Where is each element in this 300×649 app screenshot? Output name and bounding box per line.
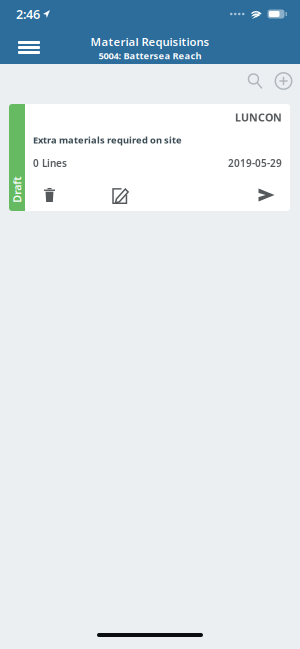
staticText: 0 Lines: [33, 156, 67, 170]
button[interactable]: Delete: [33, 181, 66, 209]
staticText: Extra materials required on site: [33, 133, 182, 146]
staticText: LUNCON: [235, 110, 282, 124]
button[interactable]: Add requisition: [269, 63, 298, 99]
button[interactable]: LUNCON: [0, 104, 300, 211]
button[interactable]: Send: [251, 181, 282, 209]
staticText: 2019-05-29: [228, 156, 282, 170]
staticText: Draft: [4, 182, 30, 197]
button[interactable]: Menu: [7, 28, 51, 64]
staticText: 2:46: [16, 5, 40, 23]
staticText: Material Requisitions: [90, 34, 209, 49]
button[interactable]: Edit: [104, 181, 137, 209]
button[interactable]: Search: [241, 63, 269, 99]
staticText: 5004: Battersea Reach: [98, 49, 201, 62]
